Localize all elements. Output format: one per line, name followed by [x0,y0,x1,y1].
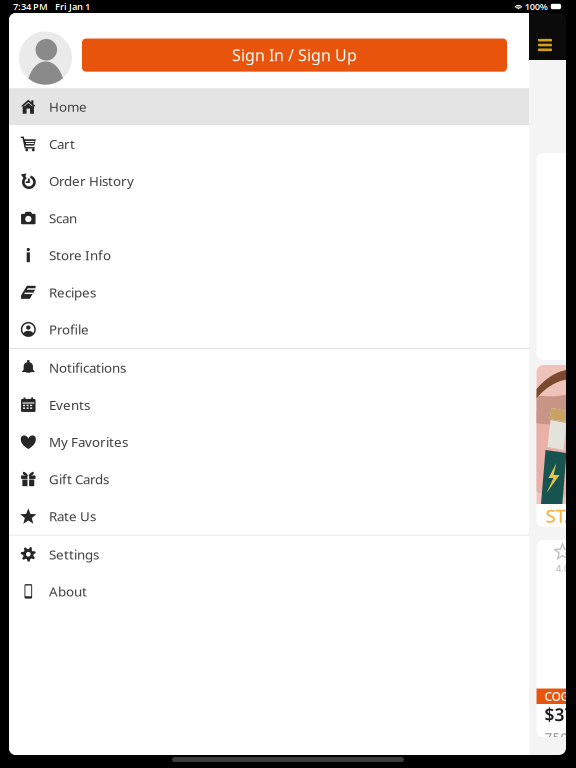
staticText: Profile [49,321,89,338]
button[interactable]: Recipes [9,274,529,311]
button[interactable]: Open menu [530,31,560,59]
staticText: Fri Jan 1 [55,0,90,13]
staticText: $37.99 [544,703,576,726]
staticText: STARWARD [545,503,576,528]
button[interactable]: Home [9,88,529,125]
staticText: Order History [49,172,134,190]
staticText: 100% [525,0,548,13]
staticText: Scan [49,209,77,227]
staticText: Settings [49,545,99,563]
button[interactable]: Scan [9,199,529,237]
staticText: COGNAC [544,688,576,704]
button[interactable]: About [9,573,529,610]
staticText: Sign In / Sign Up [232,44,357,66]
staticText: About [49,582,87,600]
staticText: Store Info [49,246,111,264]
button[interactable]: Cart [9,125,529,162]
staticText: 4.0 [556,562,569,574]
button[interactable]: My Favorites [9,423,529,460]
button[interactable]: Rate Us [9,497,529,535]
staticText: Recipes [49,283,96,301]
staticText: Home [49,98,87,115]
button[interactable]: Profile [9,311,529,348]
button[interactable]: Sign In / Sign Up [82,38,507,72]
button[interactable]: Gift Cards [9,460,529,497]
staticText: 7:34 PM [13,0,48,13]
staticText: Gift Cards [49,470,109,488]
staticText: Events [49,396,90,414]
staticText: 750ml [544,728,576,746]
staticText: Cart [49,135,75,153]
staticText: Rate Us [49,507,96,525]
staticText: My Favorites [49,433,128,451]
button[interactable]: Store Info [9,237,529,274]
button[interactable]: Settings [9,536,529,573]
staticText: Notifications [49,359,126,376]
button[interactable]: Events [9,386,529,423]
button[interactable]: Order History [9,162,529,199]
button[interactable]: Notifications [9,349,529,386]
